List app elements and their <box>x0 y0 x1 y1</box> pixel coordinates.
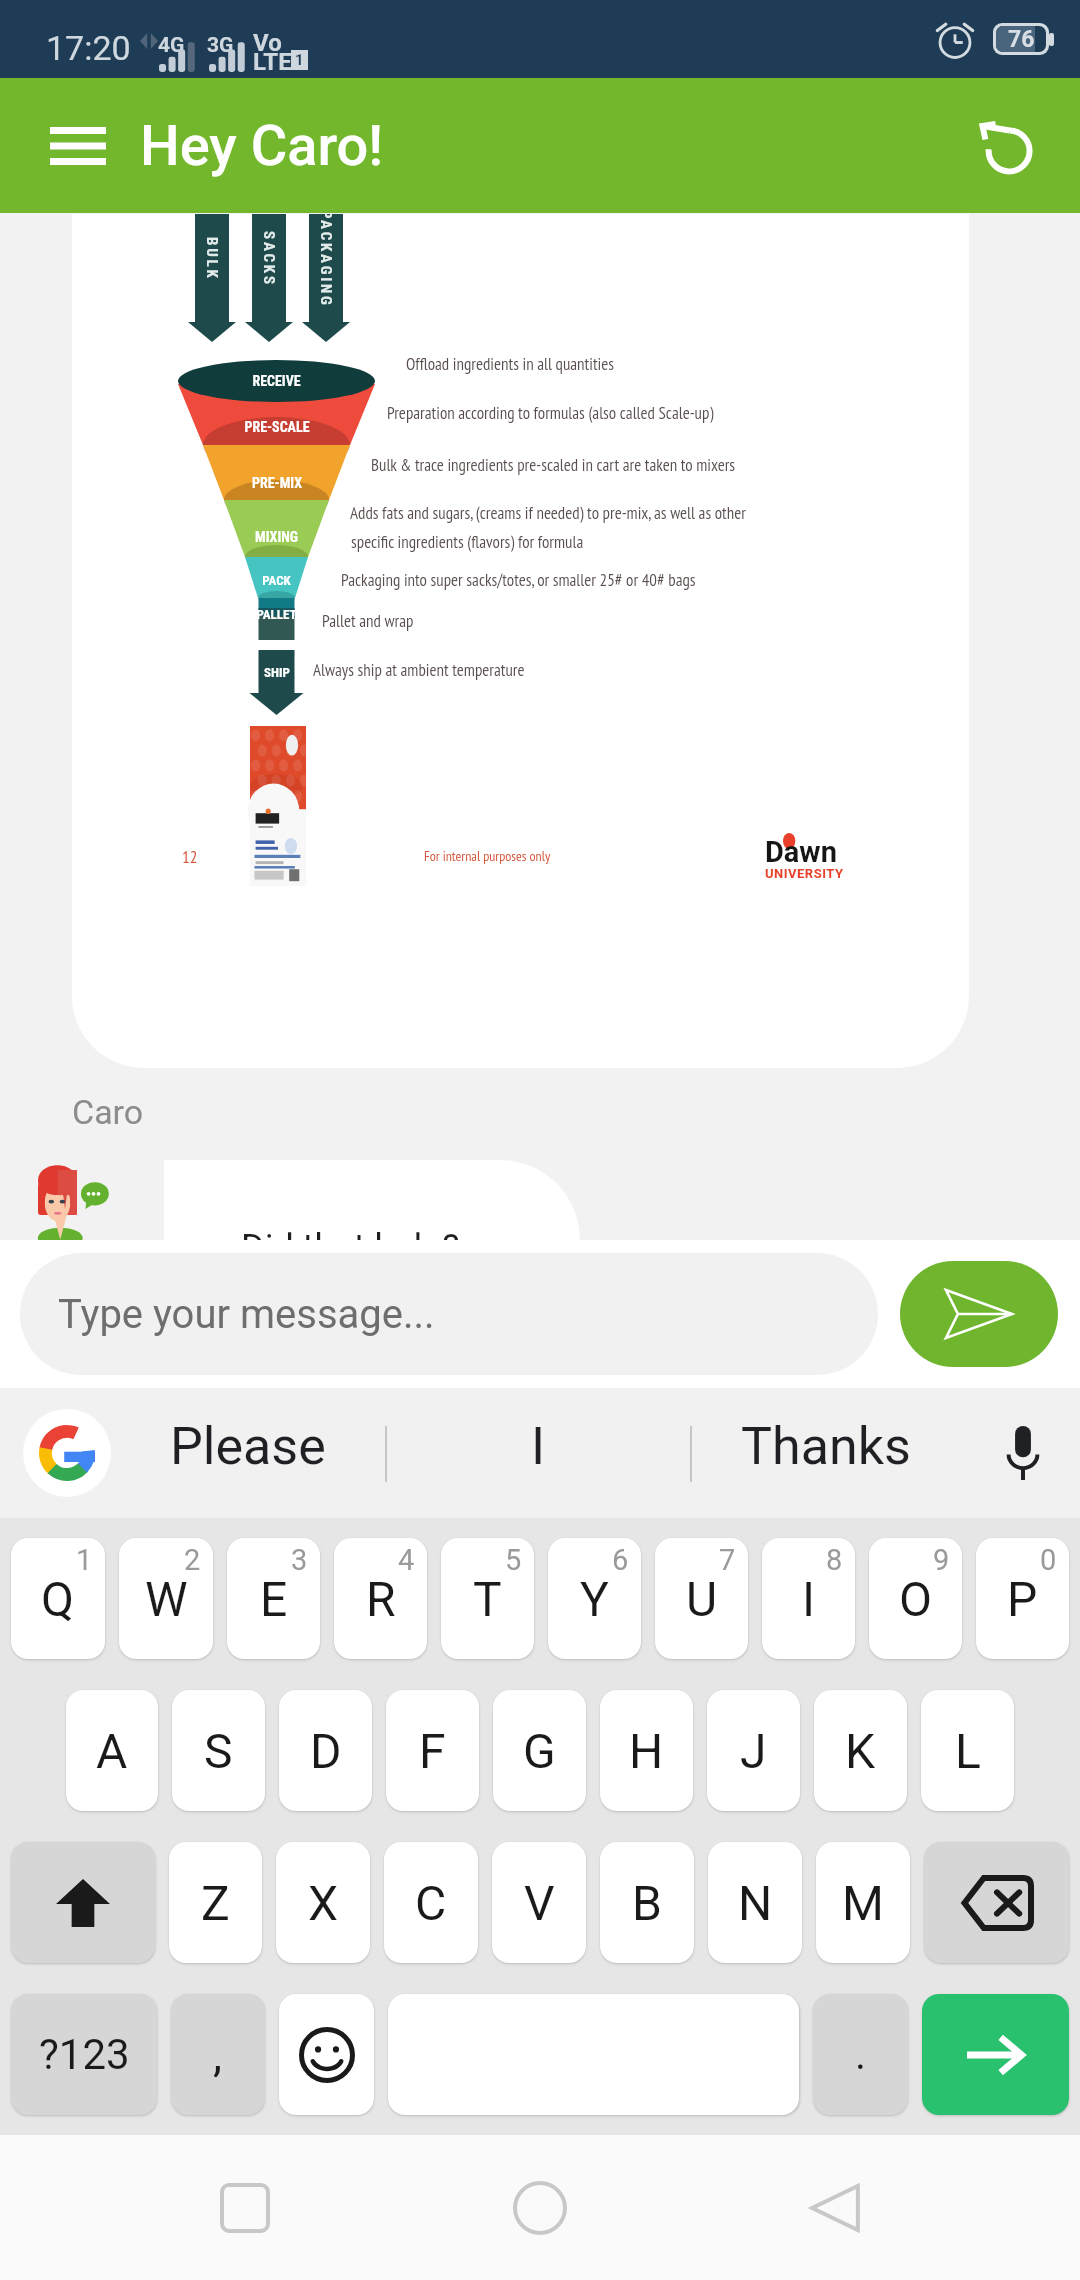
button[interactable]: Backspace <box>924 1842 1069 1963</box>
staticText: E <box>260 1571 288 1627</box>
staticText: N <box>738 1875 773 1931</box>
button[interactable]: Y <box>548 1538 641 1659</box>
staticText: Vo <box>253 29 282 57</box>
staticText: K <box>845 1723 876 1779</box>
button[interactable]: X <box>276 1842 370 1963</box>
button[interactable]: Voice input <box>985 1415 1061 1491</box>
button[interactable]: K <box>814 1690 907 1811</box>
button[interactable]: Google <box>23 1409 111 1497</box>
staticText: 76 <box>1008 26 1035 52</box>
button[interactable]: O <box>869 1538 962 1659</box>
staticText: 1 <box>295 51 304 69</box>
staticText: Hey Caro! <box>140 113 384 179</box>
button[interactable]: V <box>492 1842 586 1963</box>
staticText: MIXING <box>255 529 298 545</box>
button[interactable]: I <box>531 1416 546 1477</box>
button[interactable]: N <box>708 1842 802 1963</box>
staticText: 6 <box>612 1543 629 1577</box>
button[interactable]: S <box>172 1690 265 1811</box>
staticText: For internal purposes only <box>424 847 551 865</box>
button[interactable]: E <box>227 1538 320 1659</box>
button[interactable]: P <box>976 1538 1069 1659</box>
staticText: . <box>855 2030 867 2079</box>
button[interactable]: Shift <box>11 1842 155 1963</box>
staticText: 3G <box>207 33 234 58</box>
button[interactable]: Home <box>492 2160 588 2256</box>
button[interactable]: F <box>386 1690 479 1811</box>
staticText: U <box>686 1571 718 1627</box>
staticText: 8 <box>826 1543 843 1577</box>
staticText: A <box>96 1723 128 1779</box>
button[interactable]: B <box>600 1842 694 1963</box>
button[interactable]: C <box>384 1842 478 1963</box>
staticText: X <box>308 1875 339 1931</box>
button[interactable]: T <box>441 1538 534 1659</box>
staticText: Dawn <box>765 835 837 869</box>
staticText: D <box>310 1723 342 1779</box>
button[interactable]: Q <box>11 1538 105 1659</box>
button[interactable]: A <box>66 1690 158 1811</box>
staticText: P <box>1007 1571 1038 1627</box>
button[interactable]: R <box>334 1538 427 1659</box>
staticText: I <box>802 1571 816 1627</box>
button[interactable]: H <box>600 1690 693 1811</box>
staticText: 2 <box>184 1543 201 1577</box>
button[interactable]: , <box>171 1994 265 2115</box>
staticText: , <box>213 2028 223 2082</box>
button[interactable]: Restart conversation <box>966 106 1046 186</box>
staticText: C <box>415 1875 447 1931</box>
staticText: Packaging into super sacks/totes, or sma… <box>341 569 696 591</box>
staticText: Z <box>201 1875 230 1931</box>
button[interactable]: G <box>493 1690 586 1811</box>
staticText: 7 <box>719 1543 736 1577</box>
staticText: 4G <box>158 33 185 58</box>
button[interactable]: I <box>762 1538 855 1659</box>
button[interactable]: Thanks <box>741 1416 911 1477</box>
staticText: Offload ingredients in all quantities <box>406 353 615 375</box>
button[interactable]: J <box>707 1690 800 1811</box>
staticText: SHIP <box>264 665 290 680</box>
button[interactable]: L <box>921 1690 1014 1811</box>
staticText: Preparation according to formulas (also … <box>387 402 714 424</box>
button[interactable]: Send message <box>900 1261 1058 1367</box>
staticText: 3 <box>291 1543 308 1577</box>
button[interactable]: Open navigation menu <box>38 106 118 186</box>
button[interactable]: Did that help? <box>164 1160 580 1320</box>
staticText: Y <box>580 1571 609 1627</box>
staticText: J <box>740 1723 767 1779</box>
button[interactable]: Back <box>787 2160 883 2256</box>
button[interactable]: Z <box>169 1842 262 1963</box>
button[interactable]: Please <box>170 1416 326 1477</box>
staticText: G <box>523 1723 556 1779</box>
button[interactable]: M <box>816 1842 910 1963</box>
staticText: Q <box>41 1571 75 1627</box>
button[interactable]: Offload ingredients in all quantities <box>72 214 969 1068</box>
button[interactable]: Recent apps <box>197 2160 293 2256</box>
button[interactable]: . <box>813 1994 908 2115</box>
staticText: Adds fats and sugars, (creams if needed)… <box>350 502 746 524</box>
button[interactable]: W <box>119 1538 213 1659</box>
staticText: PACK <box>262 573 291 588</box>
staticText: L <box>955 1723 981 1779</box>
staticText: Did that help? <box>241 1227 460 1269</box>
staticText: PALLET <box>256 607 297 622</box>
staticText: 0 <box>1040 1543 1057 1577</box>
button[interactable]: ?123 <box>11 1994 157 2115</box>
staticText: specific ingredients (flavors) for formu… <box>351 531 584 553</box>
staticText: RECEIVE <box>252 373 301 389</box>
staticText: 5 <box>505 1543 522 1577</box>
staticText: ?123 <box>39 2030 130 2079</box>
button[interactable]: D <box>279 1690 372 1811</box>
button[interactable]: Type your message... <box>20 1253 878 1375</box>
button[interactable]: Emoji <box>279 1994 374 2115</box>
staticText: Bulk & trace ingredients pre-scaled in c… <box>371 454 736 476</box>
staticText: 9 <box>933 1543 950 1577</box>
button[interactable]: Enter <box>922 1994 1069 2115</box>
button[interactable]: U <box>655 1538 748 1659</box>
staticText: SACKS <box>260 231 278 287</box>
staticText: M <box>842 1875 884 1931</box>
staticText: W <box>145 1571 188 1627</box>
staticText: O <box>899 1571 933 1627</box>
staticText: PACKAGING <box>317 214 335 308</box>
